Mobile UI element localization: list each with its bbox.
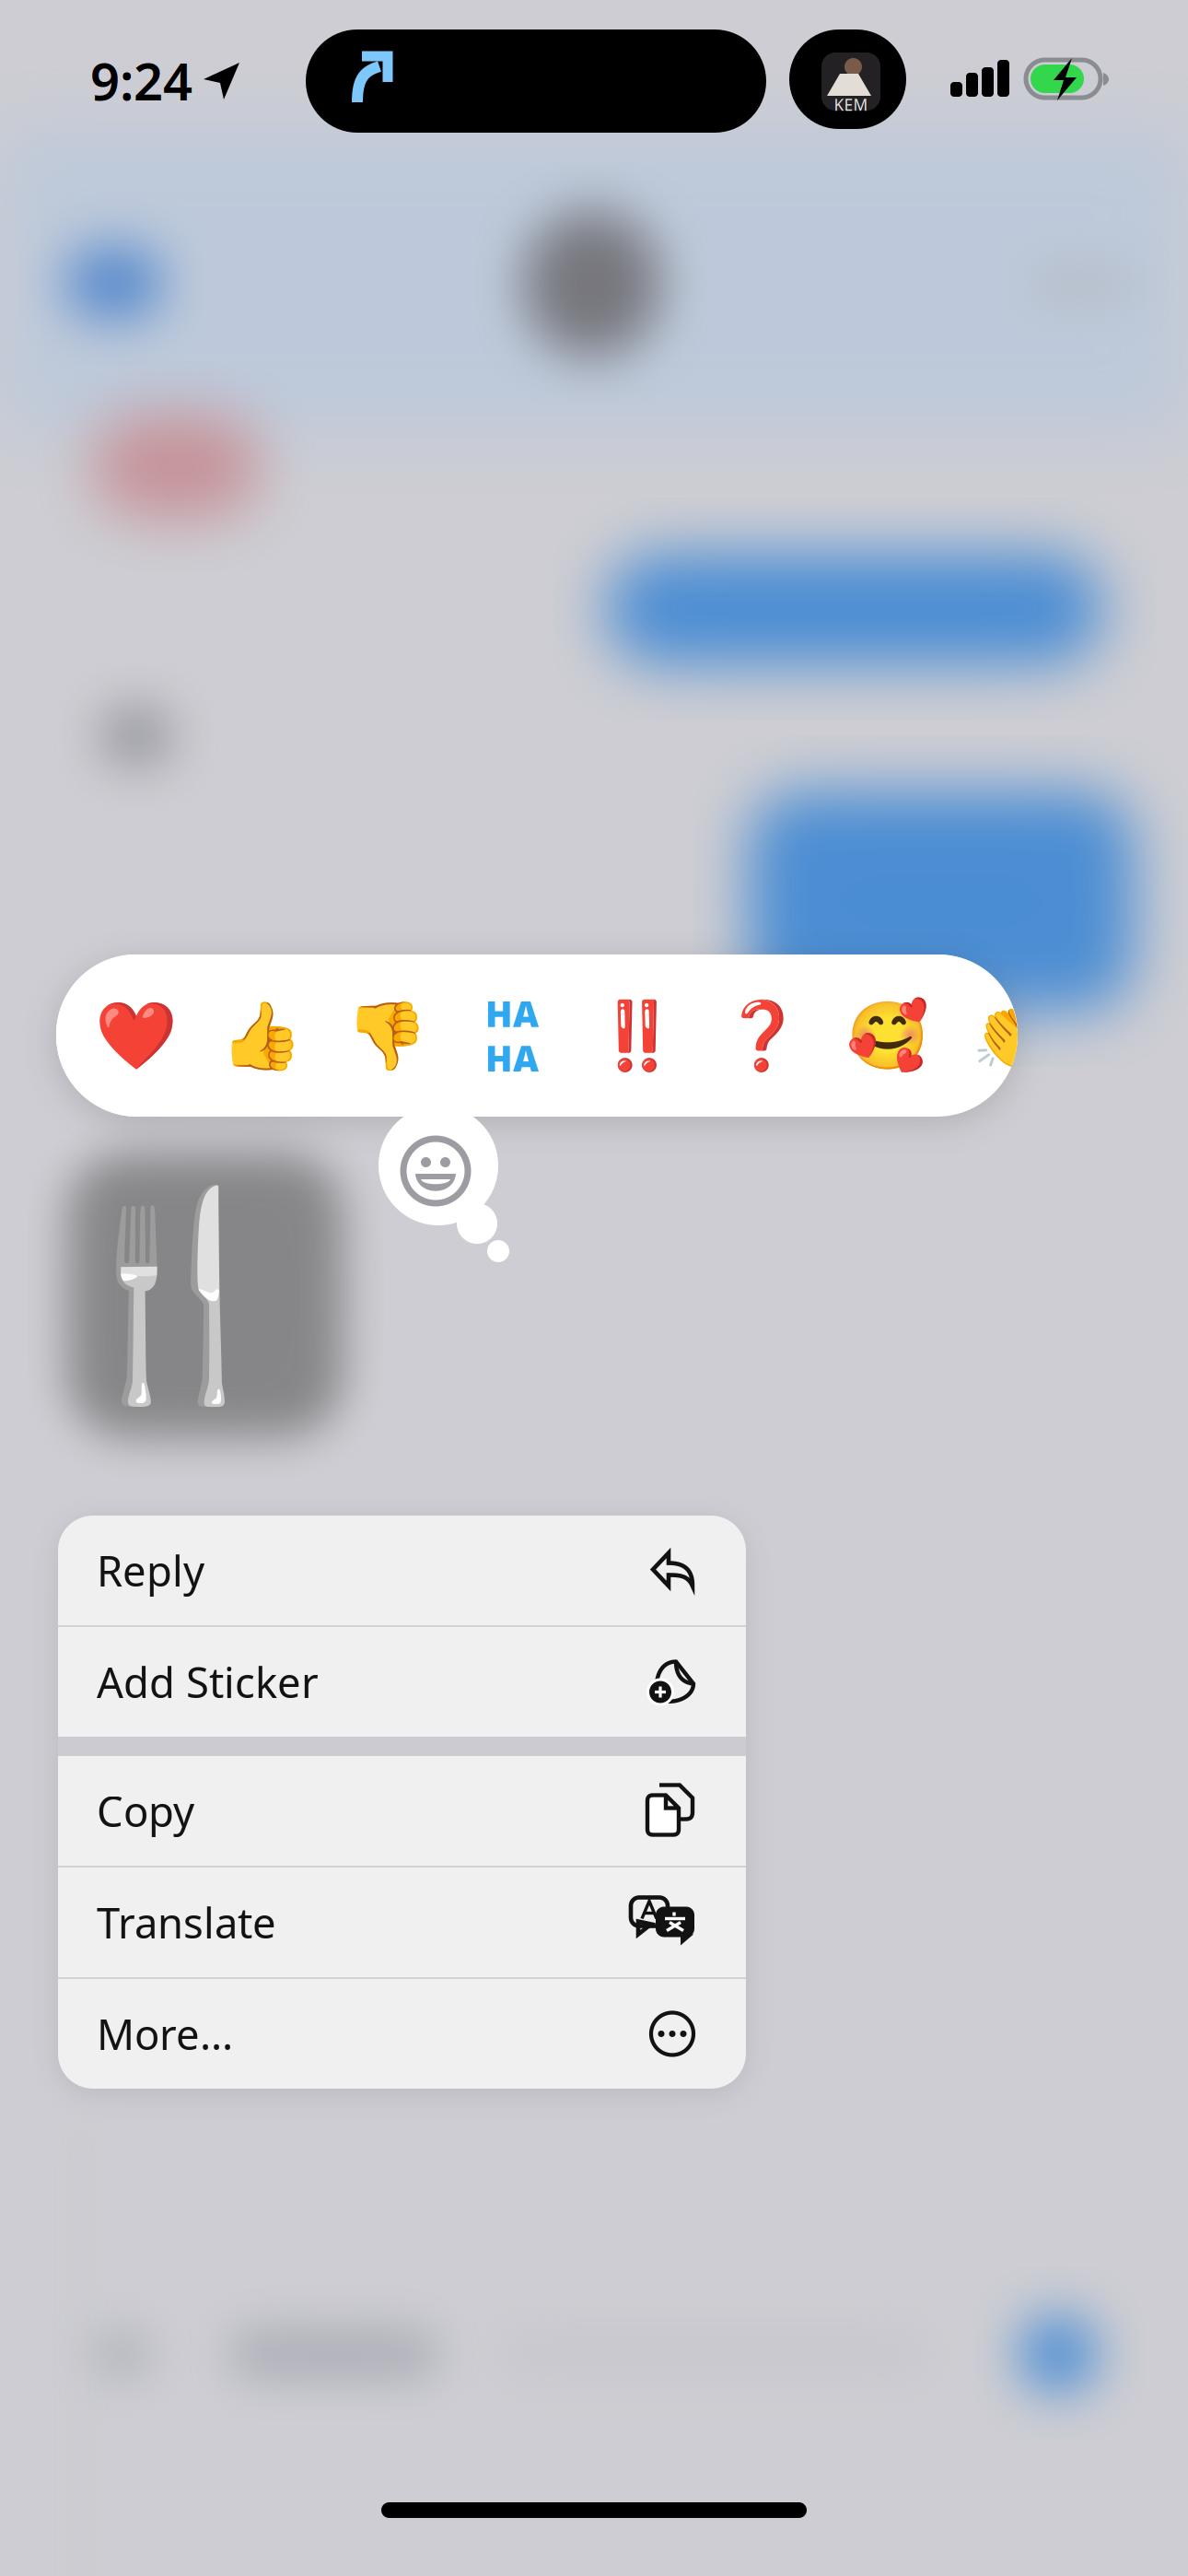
staticText: 🥰: [846, 998, 929, 1074]
staticText: KEM: [834, 94, 868, 115]
button[interactable]: More...: [58, 1979, 746, 2089]
button[interactable]: Message: [17, 1135, 332, 1456]
staticText: 9:24: [90, 46, 192, 115]
staticText: Translate: [97, 1895, 276, 1950]
staticText: 👎: [345, 998, 428, 1074]
staticText: More...: [97, 2006, 233, 2062]
staticText: 👍: [220, 998, 303, 1074]
button[interactable]: Thumbs up: [199, 954, 324, 1117]
staticText: ❤️: [95, 998, 178, 1074]
button[interactable]: More reactions: [950, 954, 1076, 1117]
button[interactable]: Reply: [58, 1516, 746, 1625]
staticText: Add Sticker: [97, 1654, 319, 1710]
button[interactable]: Add Sticker: [58, 1627, 746, 1737]
button[interactable]: Haha: [449, 956, 575, 1115]
button[interactable]: Smiling face with hearts: [825, 954, 950, 1117]
button[interactable]: Exclamation: [575, 954, 700, 1117]
staticText: 🍴: [50, 1182, 298, 1409]
staticText: ❓: [721, 998, 804, 1074]
staticText: HA: [485, 990, 539, 1037]
button[interactable]: Love: [74, 954, 199, 1117]
staticText: Copy: [97, 1783, 194, 1839]
button[interactable]: Translate: [58, 1868, 746, 1977]
staticText: 👏: [972, 998, 1054, 1074]
staticText: Reply: [97, 1543, 204, 1598]
button[interactable]: Copy: [58, 1756, 746, 1866]
staticText: ‼️: [596, 998, 679, 1074]
button[interactable]: Question mark: [700, 954, 825, 1117]
button[interactable]: Thumbs down: [324, 954, 449, 1117]
staticText: HA: [485, 1034, 539, 1081]
